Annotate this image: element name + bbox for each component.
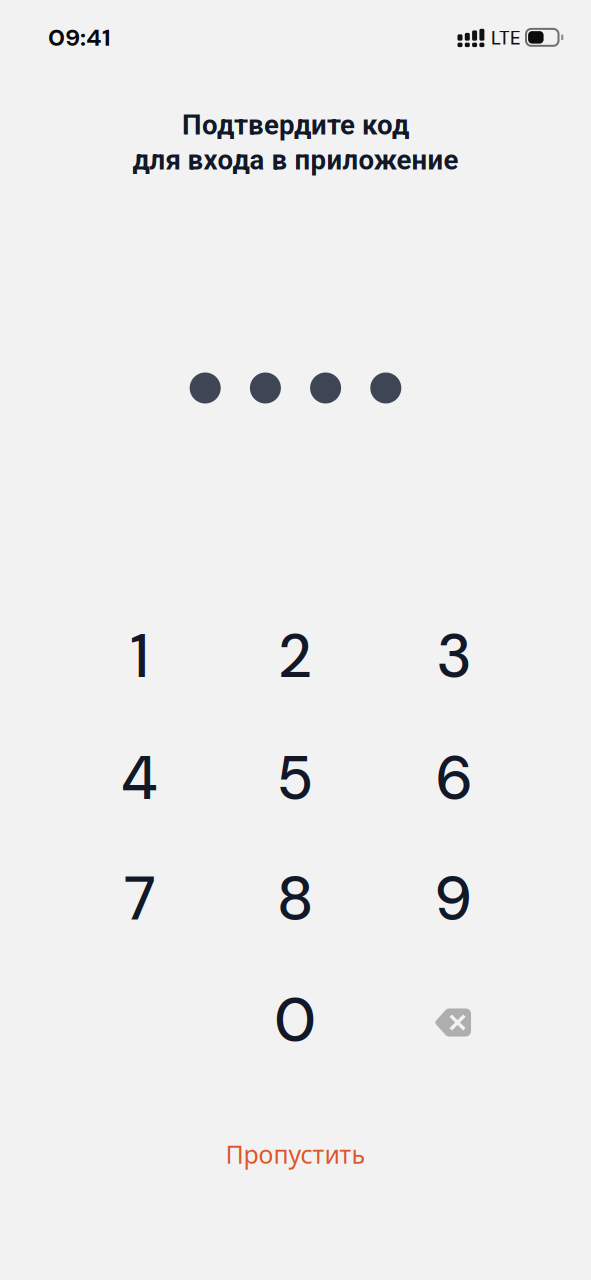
button[interactable]: 6 [394,728,514,828]
staticText: 5 [279,739,312,817]
button[interactable]: 0 [235,970,355,1070]
staticText: 8 [278,860,312,938]
button[interactable]: 9 [394,849,514,949]
button[interactable]: 5 [235,728,355,828]
button[interactable]: Пропустить [195,1131,395,1177]
staticText: 6 [436,739,471,817]
button[interactable]: 7 [79,849,199,949]
button[interactable]: Удалить [393,972,513,1072]
staticText: 3 [437,617,470,695]
staticText: Пропустить [225,1137,365,1171]
button[interactable]: 3 [394,606,514,706]
button[interactable]: 1 [79,606,199,706]
button[interactable]: 8 [235,849,355,949]
staticText: для входа в приложение [132,144,458,176]
staticText: 09:41 [48,22,111,53]
staticText: 1 [131,617,148,695]
staticText: LTE [491,26,521,50]
staticText: 4 [121,739,157,817]
staticText: Подтвердите код [182,109,409,141]
staticText: 0 [275,981,316,1059]
button[interactable]: 2 [235,606,355,706]
button[interactable]: 4 [79,728,199,828]
staticText: 2 [280,617,311,695]
staticText: 7 [124,860,155,938]
staticText: 9 [436,860,471,938]
